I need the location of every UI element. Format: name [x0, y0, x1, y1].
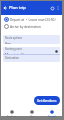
staticText: Depart at • Leave now (23:50): [10, 18, 56, 22]
staticText: Go: [30, 115, 34, 117]
staticText: Explore: [7, 115, 17, 117]
staticText: Saved: [48, 115, 56, 117]
button[interactable]: More options: [55, 5, 61, 11]
button[interactable]: Saved: [42, 107, 62, 117]
button[interactable]: Go: [22, 107, 42, 117]
button[interactable]: Explore: [1, 107, 22, 117]
staticText: Arrive by destination: [10, 25, 41, 29]
staticText: Route options: [5, 36, 23, 40]
staticText: Starting point: [5, 47, 22, 51]
button[interactable]: Starting point: [3, 47, 60, 54]
button[interactable]: Arrive by destination: [1, 23, 62, 30]
button[interactable]: Swap: [53, 48, 59, 54]
button[interactable]: Back: [2, 5, 8, 11]
button[interactable]: Route options: [3, 35, 60, 44]
staticText: Mountain View: [5, 52, 29, 54]
button[interactable]: Destination: [3, 55, 60, 62]
button[interactable]: Help: [49, 5, 55, 11]
staticText: Any: [5, 41, 11, 44]
button[interactable]: Depart at • Leave now (23:50): [1, 16, 62, 23]
staticText: Get directions: [37, 99, 57, 103]
staticText: Destination: [5, 56, 20, 60]
staticText: Plan trip: [9, 5, 26, 11]
button[interactable]: Get directions: [34, 96, 60, 105]
